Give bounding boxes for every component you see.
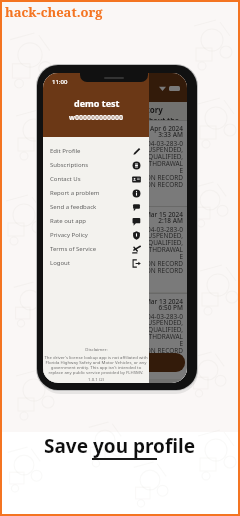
button[interactable]: Logout bbox=[43, 256, 149, 270]
staticText: 11:00 bbox=[52, 78, 68, 86]
staticText: Rate out app bbox=[50, 217, 132, 225]
button[interactable]: Contact Us bbox=[43, 172, 149, 186]
staticText: demo test bbox=[74, 97, 120, 109]
staticText: Contact Us bbox=[50, 175, 132, 183]
staticText: Watch Details bbox=[89, 357, 144, 368]
staticText: Edit Profile bbox=[50, 147, 132, 155]
staticText: Mar 13 2024 6:50 PM bbox=[144, 297, 183, 312]
staticText: Mar 15 2024 2:18 AM bbox=[144, 210, 183, 225]
button[interactable]: Subscriptions bbox=[43, 158, 149, 172]
staticText: hack-cheat.org bbox=[5, 3, 103, 21]
button[interactable]: Privacy Policy bbox=[43, 228, 149, 242]
staticText: Recent history bbox=[105, 104, 163, 115]
staticText: 104-03-283-0 SUSPENDED, DISQUALIFIED, WI… bbox=[137, 139, 183, 189]
staticText: Everything about the ... bbox=[105, 116, 187, 126]
staticText: Disclaimer: bbox=[85, 346, 108, 352]
staticText: Save you profile bbox=[44, 433, 196, 459]
button[interactable]: Mar 13 2024 6:50 PM bbox=[43, 293, 187, 379]
staticText: 1.0.1 (2) bbox=[88, 376, 104, 382]
staticText: Privacy Policy bbox=[50, 231, 132, 239]
button[interactable]: Apr 6 2024 3:33 AM bbox=[43, 120, 187, 206]
staticText: 104-03-283-0 SUSPENDED, DISQUALIFIED, WI… bbox=[137, 225, 183, 275]
staticText: w000000000000 bbox=[69, 113, 124, 123]
button[interactable]: Edit Profile bbox=[43, 144, 149, 158]
button[interactable]: Watch Details bbox=[47, 353, 185, 372]
button[interactable]: Report a problem bbox=[43, 186, 149, 200]
staticText: Send a feedback bbox=[50, 203, 132, 211]
button[interactable]: Send a feedback bbox=[43, 200, 149, 214]
staticText: Subscriptions bbox=[50, 161, 132, 169]
staticText: The driver's license lookup app is not a… bbox=[44, 354, 148, 375]
button[interactable]: Rate out app bbox=[43, 214, 149, 228]
staticText: Report a problem bbox=[50, 189, 132, 197]
staticText: 104-03-283-0 SUSPENDED, DISQUALIFIED, WI… bbox=[137, 312, 183, 362]
button[interactable]: Mar 15 2024 2:18 AM bbox=[43, 206, 187, 292]
staticText: Logout bbox=[50, 259, 132, 267]
button[interactable]: Terms of Service bbox=[43, 242, 149, 256]
staticText: Terms of Service bbox=[50, 245, 132, 253]
staticText: Apr 6 2024 3:33 AM bbox=[149, 124, 183, 139]
